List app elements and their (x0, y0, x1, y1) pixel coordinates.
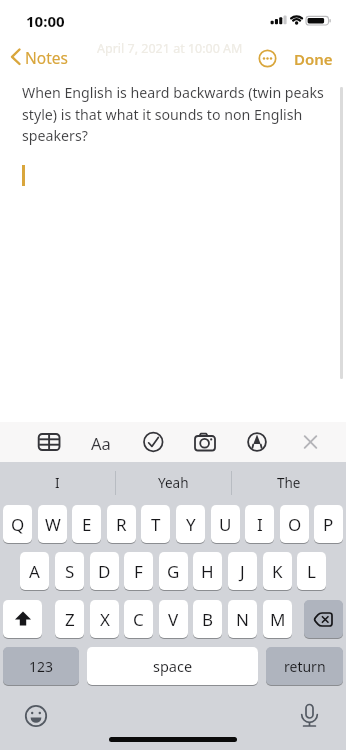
button[interactable]: F (124, 552, 153, 591)
button[interactable]: B (193, 600, 222, 639)
button[interactable] (36, 425, 64, 459)
button[interactable]: N (228, 600, 257, 639)
staticText: T (151, 513, 161, 536)
button[interactable]: O (280, 505, 309, 544)
button[interactable]: Done (290, 47, 336, 71)
staticText: C (133, 608, 144, 631)
button[interactable] (258, 49, 277, 68)
button[interactable]: Q (3, 505, 32, 544)
button[interactable]: W (38, 505, 67, 544)
staticText: U (219, 513, 232, 536)
button[interactable]: The (231, 462, 346, 504)
button[interactable]: G (159, 552, 188, 591)
staticText: W (45, 513, 61, 536)
button[interactable] (296, 702, 323, 732)
button[interactable]: T (141, 505, 170, 544)
button[interactable] (304, 600, 343, 639)
staticText: Done (294, 49, 333, 69)
staticText: I (55, 474, 60, 492)
staticText: 10:00 (26, 11, 65, 31)
staticText: N (236, 608, 249, 631)
staticText: J (240, 560, 245, 583)
staticText: I (257, 513, 263, 536)
button[interactable]: Yeah (116, 462, 231, 504)
button[interactable]: L (297, 552, 326, 591)
staticText: When English is heard backwards (twin pe… (22, 83, 324, 145)
staticText: R (116, 513, 127, 536)
button[interactable]: return (266, 647, 343, 686)
button[interactable]: X (90, 600, 119, 639)
button[interactable]: E (72, 505, 101, 544)
staticText: G (167, 560, 180, 583)
button[interactable]: P (314, 505, 343, 544)
button[interactable]: M (263, 600, 292, 639)
button[interactable]: C (124, 600, 153, 639)
staticText: M (270, 608, 286, 631)
button[interactable]: U (211, 505, 240, 544)
staticText: Q (11, 513, 25, 536)
button[interactable]: J (228, 552, 257, 591)
button[interactable]: R (107, 505, 136, 544)
button[interactable]: S (55, 552, 84, 591)
staticText: Notes (25, 47, 68, 68)
button[interactable]: Y (176, 505, 205, 544)
staticText: space (153, 656, 193, 676)
staticText: F (134, 560, 143, 583)
button[interactable]: Z (55, 600, 84, 639)
staticText: 123 (29, 657, 54, 676)
staticText: V (168, 608, 179, 631)
staticText: P (323, 513, 334, 536)
button[interactable]: 123 (3, 647, 79, 686)
button[interactable]: Aa (91, 432, 111, 454)
button[interactable] (22, 703, 50, 731)
staticText: H (201, 560, 214, 583)
staticText: Z (65, 608, 75, 631)
staticText: E (82, 513, 92, 536)
button[interactable]: A (20, 552, 49, 591)
staticText: D (98, 560, 111, 583)
staticText: K (272, 560, 283, 583)
staticText: Y (186, 513, 196, 536)
staticText: S (65, 560, 75, 583)
staticText: return (284, 657, 326, 676)
staticText: The (277, 474, 301, 492)
button[interactable]: I (245, 505, 274, 544)
button[interactable]: V (159, 600, 188, 639)
staticText: April 7, 2021 at 10:00 AM (97, 40, 243, 57)
staticText: X (100, 608, 110, 631)
button[interactable]: Notes (6, 45, 68, 71)
button[interactable]: space (87, 647, 258, 686)
button[interactable]: K (263, 552, 292, 591)
button[interactable]: I (0, 462, 115, 504)
button[interactable]: H (193, 552, 222, 591)
staticText: Yeah (158, 474, 189, 492)
staticText: L (307, 560, 316, 583)
button[interactable] (3, 600, 42, 639)
staticText: A (29, 560, 40, 583)
button[interactable]: D (90, 552, 119, 591)
staticText: O (288, 513, 302, 536)
staticText: B (202, 608, 214, 631)
